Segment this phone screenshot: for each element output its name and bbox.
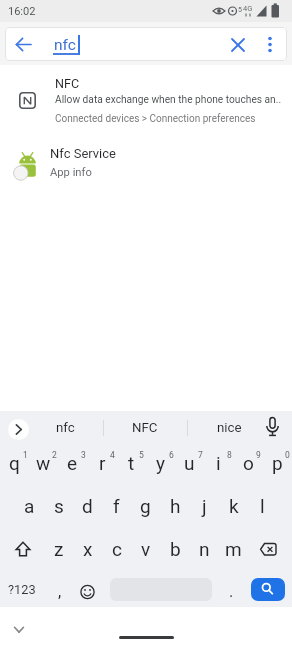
staticText: k (229, 495, 239, 517)
staticText: 9 (256, 450, 261, 460)
button[interactable] (0, 71, 292, 133)
button[interactable]: z (44, 528, 73, 570)
button[interactable] (0, 138, 292, 188)
staticText: 4 (110, 450, 115, 460)
staticText: NFC (132, 420, 158, 436)
button[interactable]: ?123 (0, 571, 44, 608)
staticText: q (9, 452, 20, 474)
staticText: e (67, 452, 78, 474)
button[interactable]: x (73, 528, 102, 570)
staticText: n (199, 538, 210, 560)
button[interactable] (74, 578, 101, 605)
staticText: nfc (56, 420, 75, 436)
button[interactable]: y (146, 442, 175, 483)
staticText: NFC (55, 76, 80, 91)
button[interactable] (8, 419, 29, 440)
button[interactable]: h (161, 485, 190, 526)
staticText: Connected devices > Connection preferenc… (55, 113, 256, 125)
button[interactable] (12, 32, 36, 56)
button[interactable]: e (58, 442, 87, 483)
staticText: 3 (81, 450, 86, 460)
staticText: , (58, 582, 62, 601)
staticText: 7 (198, 450, 203, 460)
button[interactable]: q (0, 442, 29, 483)
staticText: u (184, 452, 195, 474)
button[interactable]: f (102, 485, 131, 526)
staticText: nice (217, 420, 242, 436)
staticText: ?123 (8, 582, 36, 597)
staticText: nfc (54, 36, 76, 54)
staticText: 16:02 (8, 5, 36, 18)
button[interactable]: nice (193, 412, 266, 443)
button[interactable]: t (117, 442, 146, 483)
staticText: o (243, 452, 254, 474)
button[interactable]: n (190, 528, 219, 570)
button[interactable]: nfc (34, 412, 96, 443)
staticText: f (113, 495, 120, 517)
button[interactable] (119, 636, 174, 639)
button[interactable]: s (44, 485, 73, 526)
staticText: 1 (23, 450, 28, 460)
button[interactable]: i (204, 442, 233, 483)
button[interactable]: NFC (108, 412, 182, 443)
staticText: 8 (227, 450, 232, 460)
button[interactable] (6, 618, 32, 642)
button[interactable]: d (73, 485, 102, 526)
button[interactable] (251, 578, 285, 601)
staticText: x (83, 538, 93, 560)
button[interactable] (226, 33, 250, 57)
button[interactable] (260, 415, 285, 440)
button[interactable]: m (219, 528, 248, 570)
staticText: . (229, 582, 234, 601)
button[interactable]: l (248, 485, 277, 526)
staticText: p (272, 452, 283, 474)
button[interactable]: g (131, 485, 160, 526)
button[interactable] (254, 534, 286, 564)
staticText: i (216, 452, 221, 474)
staticText: App info (50, 166, 92, 179)
staticText: w (36, 452, 51, 474)
staticText: y (156, 452, 165, 474)
button[interactable]: u (175, 442, 204, 483)
staticText: z (54, 538, 64, 560)
button[interactable]: j (190, 485, 219, 526)
staticText: l (260, 495, 265, 517)
button[interactable]: r (88, 442, 117, 483)
staticText: v (141, 538, 151, 560)
staticText: 0 (285, 450, 290, 460)
button[interactable]: c (102, 528, 131, 570)
staticText: 5 (238, 6, 242, 14)
staticText: j (202, 495, 207, 517)
button[interactable]: k (219, 485, 248, 526)
button[interactable]: v (131, 528, 160, 570)
staticText: 2 (52, 450, 57, 460)
staticText: m (225, 538, 242, 560)
button[interactable] (258, 32, 282, 57)
staticText: Nfc Service (50, 146, 116, 161)
staticText: 4G (243, 4, 253, 13)
staticText: a (24, 495, 35, 517)
staticText: 5 (139, 450, 144, 460)
staticText: b (170, 538, 181, 560)
button[interactable] (7, 534, 39, 564)
staticText: r (99, 452, 106, 474)
staticText: 6 (169, 450, 174, 460)
staticText: t (128, 452, 135, 474)
staticText: h (170, 495, 181, 517)
staticText: s (54, 495, 64, 517)
staticText: g (140, 495, 151, 517)
staticText: c (112, 538, 122, 560)
staticText: Allow data exchange when the phone touch… (55, 94, 282, 106)
button[interactable]: p (263, 442, 292, 483)
button[interactable]: a (15, 485, 44, 526)
button[interactable]: o (234, 442, 263, 483)
button[interactable]: w (29, 442, 58, 483)
button[interactable]: b (161, 528, 190, 570)
staticText: d (82, 495, 93, 517)
